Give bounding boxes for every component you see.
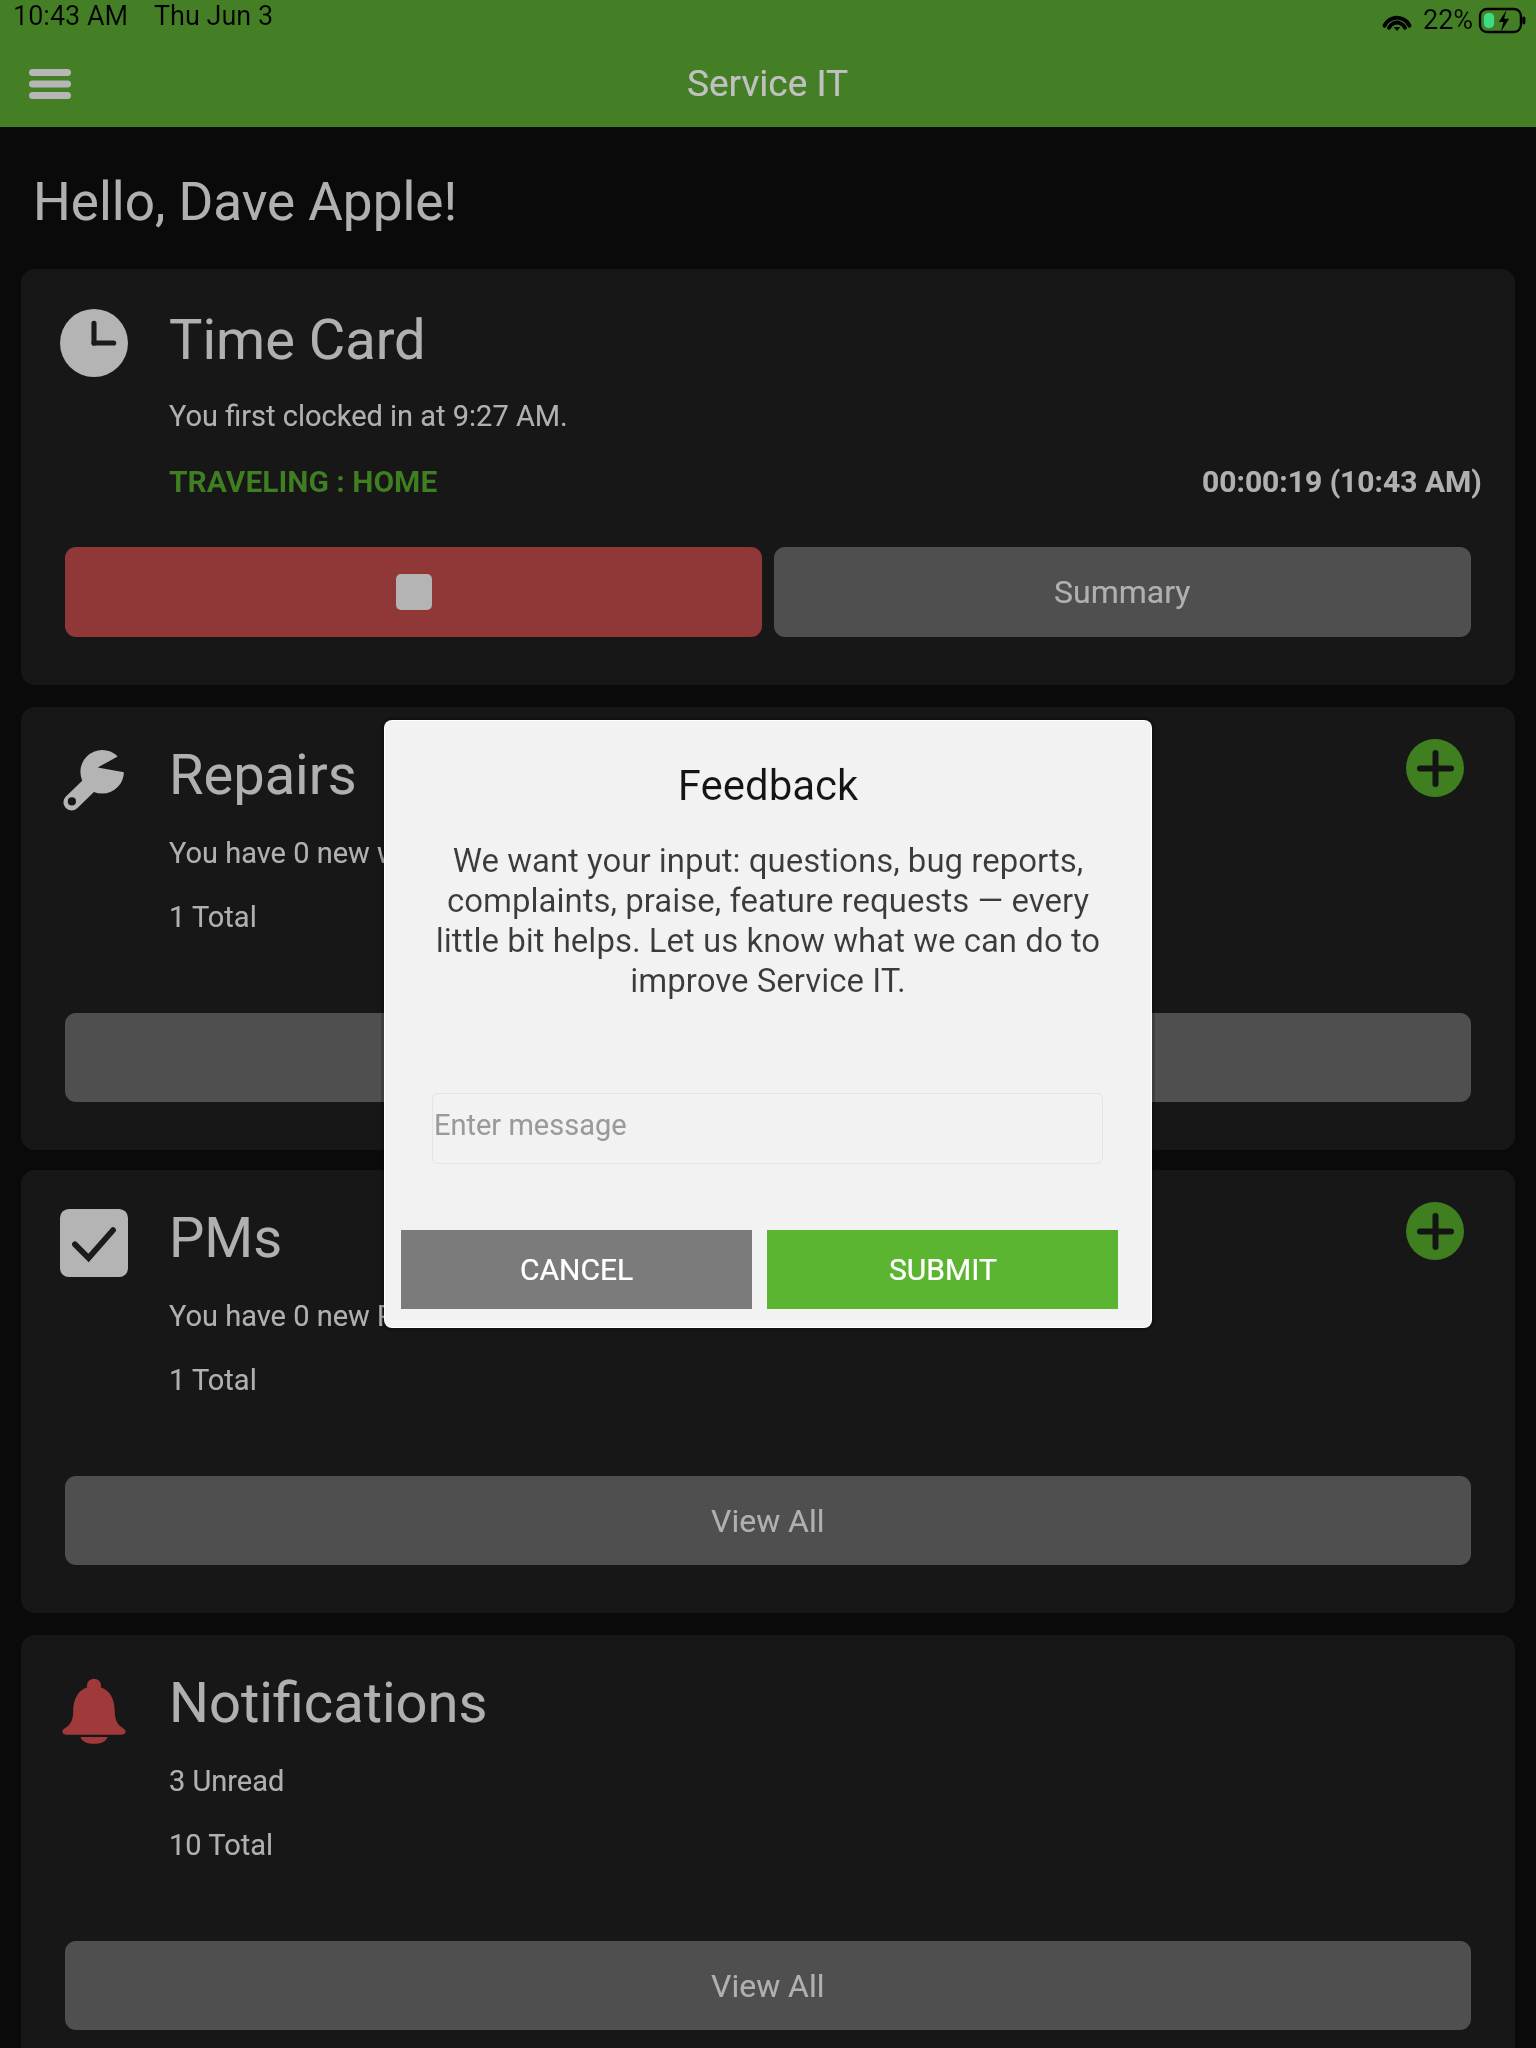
- button[interactable]: View All: [65, 1013, 1471, 1102]
- staticText: Hello, Dave Apple!: [33, 171, 458, 233]
- staticText: We want your input: questions, bug repor…: [385, 841, 1151, 1000]
- staticText: Notifications: [169, 1670, 488, 1736]
- staticText: Feedback: [385, 761, 1151, 810]
- staticText: 22%: [1423, 4, 1474, 36]
- button[interactable]: Summary: [774, 547, 1471, 637]
- button[interactable]: Repairs: [21, 707, 1515, 1150]
- button[interactable]: Add: [1406, 1202, 1464, 1260]
- button[interactable]: Notifications: [21, 1635, 1515, 2048]
- staticText: 1 Total: [169, 1363, 257, 1397]
- staticText: You have 0 new PMs.: [169, 1299, 444, 1333]
- staticText: 00:00:19 (10:43 AM): [1202, 464, 1482, 499]
- staticText: You have 0 new work orders.: [169, 836, 538, 870]
- staticText: 10:43 AM: [13, 0, 129, 32]
- staticText: View All: [711, 1967, 825, 2005]
- button[interactable]: PMs: [21, 1170, 1515, 1613]
- staticText: 10 Total: [169, 1828, 273, 1862]
- button[interactable]: Time Card: [21, 269, 1515, 685]
- button[interactable]: CANCEL: [401, 1230, 752, 1309]
- staticText: Summary: [1054, 573, 1191, 611]
- staticText: Time Card: [169, 307, 426, 373]
- button[interactable]: View All: [65, 1476, 1471, 1565]
- staticText: 3 Unread: [169, 1764, 285, 1798]
- button[interactable]: Stop: [65, 547, 762, 637]
- button[interactable]: Menu: [8, 42, 92, 126]
- staticText: Service IT: [687, 62, 849, 105]
- button[interactable]: SUBMIT: [767, 1230, 1118, 1309]
- button[interactable]: Add: [1406, 739, 1464, 797]
- staticText: View All: [711, 1502, 825, 1540]
- staticText: You first clocked in at 9:27 AM.: [169, 399, 568, 433]
- staticText: Thu Jun 3: [154, 0, 274, 32]
- staticText: 1 Total: [169, 900, 257, 934]
- staticText: Repairs: [169, 742, 357, 808]
- button[interactable]: Enter message: [432, 1093, 1103, 1164]
- staticText: TRAVELING : HOME: [169, 464, 438, 499]
- staticText: SUBMIT: [889, 1252, 997, 1287]
- staticText: CANCEL: [520, 1252, 634, 1287]
- staticText: PMs: [169, 1205, 283, 1271]
- staticText: Enter message: [434, 1108, 627, 1142]
- button[interactable]: View All: [65, 1941, 1471, 2030]
